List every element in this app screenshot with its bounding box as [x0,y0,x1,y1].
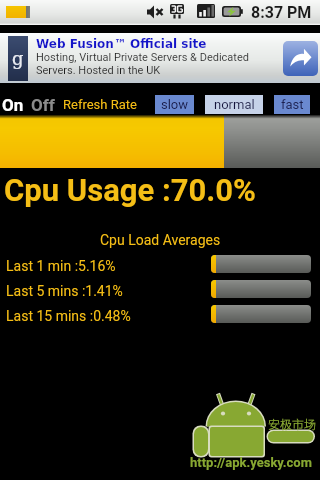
staticText: Web Fusion™ Official site [36,37,207,51]
staticText: g [12,48,24,69]
staticText: 8:37 PM [251,3,312,22]
button[interactable]: slow [155,95,194,114]
staticText: Hosting, Virtual Private Servers & Dedic… [36,51,249,64]
staticText: 安极市场 [268,415,317,432]
staticText: Last 15 mins :0.48% [6,308,131,324]
staticText: fast [281,97,304,112]
staticText: Off [31,95,55,115]
button[interactable]: normal [205,95,263,114]
staticText: normal [214,97,255,112]
staticText: On [2,95,24,115]
staticText: Refresh Rate [63,97,137,112]
staticText: Cpu Load Averages [100,232,221,248]
staticText: slow [161,97,189,112]
staticText: Last 5 mins :1.41% [6,283,123,299]
button[interactable]: Off [31,95,55,115]
button[interactable]: Open ad [283,41,318,76]
button[interactable]: fast [274,95,310,114]
staticText: Last 1 min :5.16% [6,258,116,274]
button[interactable]: g [0,33,320,83]
staticText: http://apk.yesky.com [190,455,312,470]
staticText: Servers. Hosted in the UK [36,64,161,77]
staticText: Cpu Usage :70.0% [4,172,257,208]
button[interactable]: On [2,95,24,115]
